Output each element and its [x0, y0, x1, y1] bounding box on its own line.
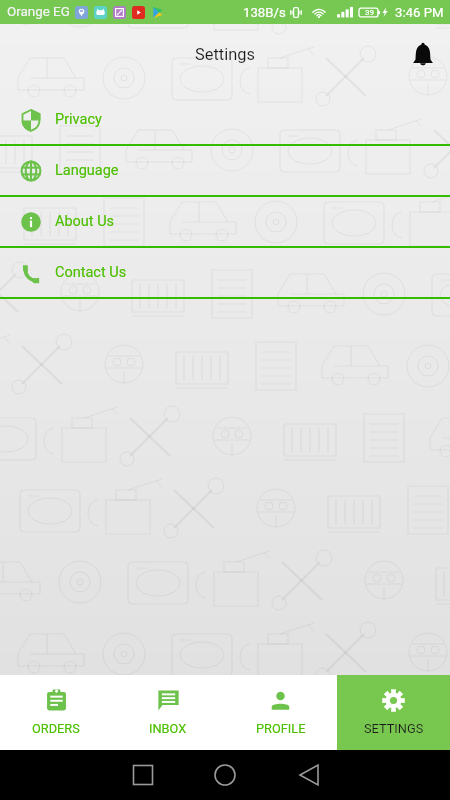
button[interactable]: SETTINGS: [337, 675, 450, 750]
staticText: About Us: [55, 213, 115, 230]
staticText: ORDERS: [32, 721, 80, 736]
staticText: Orange EG: [7, 4, 70, 20]
staticText: PROFILE: [256, 721, 306, 736]
button[interactable]: Contact Us: [0, 248, 450, 299]
button[interactable]: INBOX: [112, 675, 224, 750]
button[interactable]: ORDERS: [0, 675, 112, 750]
button[interactable]: Privacy: [0, 95, 450, 146]
staticText: INBOX: [149, 721, 187, 736]
button[interactable]: About Us: [0, 197, 450, 248]
staticText: Language: [55, 162, 119, 179]
button[interactable]: PROFILE: [224, 675, 337, 750]
staticText: 3:46 PM: [395, 5, 444, 20]
staticText: Contact Us: [55, 264, 127, 281]
staticText: 39: [365, 8, 374, 17]
staticText: Settings: [195, 45, 255, 64]
button[interactable]: Notifications: [402, 33, 444, 75]
staticText: SETTINGS: [364, 721, 424, 736]
staticText: 138B/s: [243, 5, 286, 20]
staticText: Privacy: [55, 111, 102, 128]
button[interactable]: Language: [0, 146, 450, 197]
